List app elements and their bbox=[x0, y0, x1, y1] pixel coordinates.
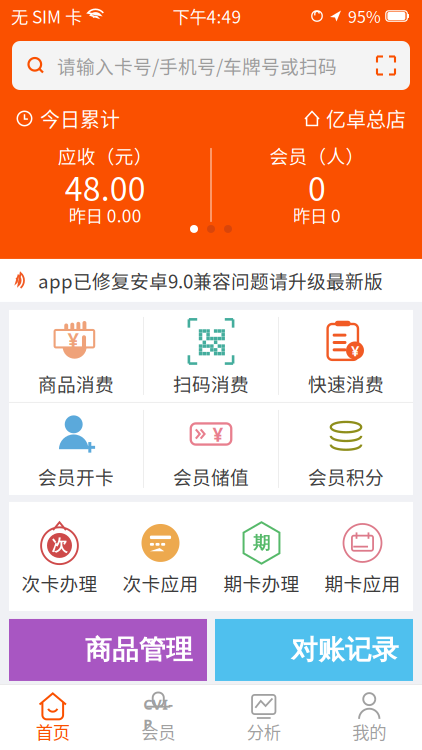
button[interactable]: ¥ bbox=[144, 403, 278, 495]
staticText: 亿卓总店 bbox=[326, 104, 406, 133]
staticText: 会员储值 bbox=[173, 463, 249, 490]
staticText: 期卡应用 bbox=[324, 569, 400, 596]
staticText: 48.00 bbox=[65, 164, 146, 210]
staticText: 期卡办理 bbox=[223, 569, 299, 596]
staticText: 应收（元） bbox=[58, 142, 153, 169]
button[interactable]: 首页 bbox=[0, 685, 105, 750]
button[interactable]: 我的 bbox=[316, 685, 422, 750]
staticText: 会员积分 bbox=[308, 463, 384, 490]
staticText: 会员（人） bbox=[269, 142, 364, 169]
button[interactable]: 分析 bbox=[211, 685, 316, 750]
staticText: 0 bbox=[308, 164, 326, 210]
staticText: 次卡办理 bbox=[21, 569, 97, 596]
staticText: 95% bbox=[348, 4, 381, 28]
button[interactable]: app已修复安卓9.0兼容问题请升级最新版 bbox=[0, 259, 422, 302]
staticText: ¥ bbox=[67, 326, 78, 353]
staticText: 会员 bbox=[141, 719, 175, 744]
staticText: 我的 bbox=[352, 719, 386, 744]
staticText: CVIP bbox=[143, 694, 173, 734]
staticText: 快速消费 bbox=[308, 370, 384, 397]
staticText: 对账记录 bbox=[291, 633, 399, 667]
button[interactable]: 次 bbox=[9, 502, 110, 611]
staticText: 商品管理 bbox=[85, 633, 193, 667]
button[interactable]: 亿卓总店 bbox=[304, 104, 406, 133]
button[interactable]: CVIP bbox=[105, 685, 211, 750]
staticText: ¥ bbox=[212, 422, 223, 447]
button[interactable]: 期 bbox=[211, 502, 312, 611]
staticText: 商品消费 bbox=[38, 370, 114, 397]
staticText: 扫码消费 bbox=[173, 370, 249, 397]
button[interactable]: 会员开卡 bbox=[9, 403, 143, 495]
button[interactable]: 会员积分 bbox=[279, 403, 413, 495]
button[interactable]: 商品管理 bbox=[9, 619, 207, 681]
staticText: 期 bbox=[253, 532, 270, 554]
staticText: 会员开卡 bbox=[38, 463, 114, 490]
button[interactable]: 期卡应用 bbox=[312, 502, 413, 611]
staticText: 昨日 0 bbox=[293, 202, 341, 227]
staticText: 请输入卡号/手机号/车牌号或扫码 bbox=[57, 52, 337, 79]
button[interactable]: 次卡应用 bbox=[110, 502, 211, 611]
button[interactable]: ¥ bbox=[9, 310, 143, 402]
staticText: app已修复安卓9.0兼容问题请升级最新版 bbox=[38, 267, 383, 294]
staticText: 次 bbox=[51, 535, 67, 556]
staticText: 无 SIM 卡 bbox=[11, 3, 82, 29]
button[interactable]: 请输入卡号/手机号/车牌号或扫码 bbox=[12, 41, 410, 90]
button[interactable]: 扫码消费 bbox=[144, 310, 278, 402]
staticText: 昨日 0.00 bbox=[69, 202, 142, 227]
staticText: 下午4:49 bbox=[172, 3, 241, 29]
staticText: 次卡应用 bbox=[122, 569, 198, 596]
staticText: 分析 bbox=[247, 719, 281, 744]
staticText: 今日累计 bbox=[40, 104, 120, 133]
button[interactable]: 对账记录 bbox=[215, 619, 413, 681]
staticText: 首页 bbox=[36, 719, 70, 744]
button[interactable]: ¥ bbox=[279, 310, 413, 402]
staticText: ¥ bbox=[351, 340, 359, 360]
